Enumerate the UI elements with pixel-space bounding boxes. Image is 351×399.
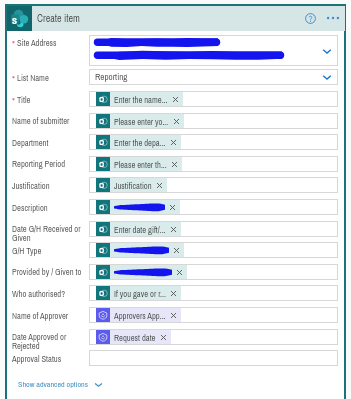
staticText: Who authorised?	[12, 288, 66, 299]
button[interactable]: Remove	[168, 203, 177, 212]
staticText: *	[12, 38, 15, 50]
staticText: Create item	[37, 12, 80, 25]
button[interactable]: Remove	[175, 268, 184, 277]
button[interactable]: Help	[300, 8, 320, 28]
button[interactable]: Justification	[89, 177, 338, 193]
button[interactable]: If you gave or r...	[89, 285, 338, 301]
button[interactable]: Remove	[169, 311, 178, 320]
button[interactable]: Remove	[172, 117, 181, 126]
button[interactable]: Request date	[89, 329, 338, 345]
staticText: Date G/H Received or Given	[12, 223, 88, 243]
button[interactable]: Remove	[169, 289, 178, 298]
button[interactable]: Reporting	[89, 69, 338, 85]
button[interactable]: Remove	[155, 181, 164, 190]
staticText: Name of submitter	[12, 115, 70, 126]
button[interactable]: Remove	[169, 138, 178, 147]
button[interactable]: More options	[323, 8, 343, 28]
staticText: Reporting Period	[12, 158, 66, 169]
button[interactable]: Approvers App...	[89, 307, 338, 323]
staticText: Justification	[114, 180, 152, 191]
button[interactable]: Please enter yo...	[89, 113, 338, 129]
button[interactable]	[89, 35, 338, 66]
staticText: Enter the name...	[114, 94, 168, 105]
staticText: Please enter yo...	[114, 116, 169, 127]
staticText: Department	[12, 137, 49, 148]
staticText: Provided by / Given to	[12, 266, 82, 277]
button[interactable]: Enter the depa...	[89, 134, 338, 150]
staticText: Please enter th...	[114, 159, 167, 170]
staticText: Request date	[114, 332, 156, 343]
staticText: Approvers App...	[114, 310, 166, 321]
staticText: *	[12, 73, 15, 85]
staticText: Approval Status	[12, 353, 62, 364]
staticText: Enter the depa...	[114, 137, 166, 148]
staticText: Justification	[12, 180, 50, 191]
staticText: S	[12, 15, 17, 27]
button[interactable]: Remove	[89, 242, 338, 258]
button[interactable]: Remove	[172, 246, 181, 255]
staticText: Enter date gift/...	[114, 224, 166, 235]
staticText: Name of Approver	[12, 310, 69, 321]
staticText: Description	[12, 202, 48, 213]
button[interactable]: Show advanced options	[16, 377, 105, 392]
button[interactable]: Remove	[89, 264, 338, 280]
staticText: Date Approved or Rejected	[12, 331, 88, 351]
button[interactable]	[89, 350, 338, 366]
staticText: G/H Type	[12, 245, 42, 256]
staticText: Title	[17, 94, 31, 105]
button[interactable]: Remove	[89, 199, 338, 215]
button[interactable]: Remove	[169, 225, 178, 234]
button[interactable]: Remove	[159, 333, 168, 342]
staticText: If you gave or r...	[114, 288, 166, 299]
staticText: Reporting	[95, 71, 128, 83]
button[interactable]: Please enter th...	[89, 156, 338, 172]
button[interactable]: Enter the name...	[89, 91, 338, 107]
staticText: List Name	[17, 72, 49, 83]
staticText: Show advanced options	[18, 379, 89, 390]
staticText: Site Address	[17, 37, 57, 48]
button[interactable]: Remove	[170, 160, 179, 169]
button[interactable]: Enter date gift/...	[89, 221, 338, 237]
staticText: *	[12, 95, 15, 107]
button[interactable]: Remove	[171, 95, 180, 104]
